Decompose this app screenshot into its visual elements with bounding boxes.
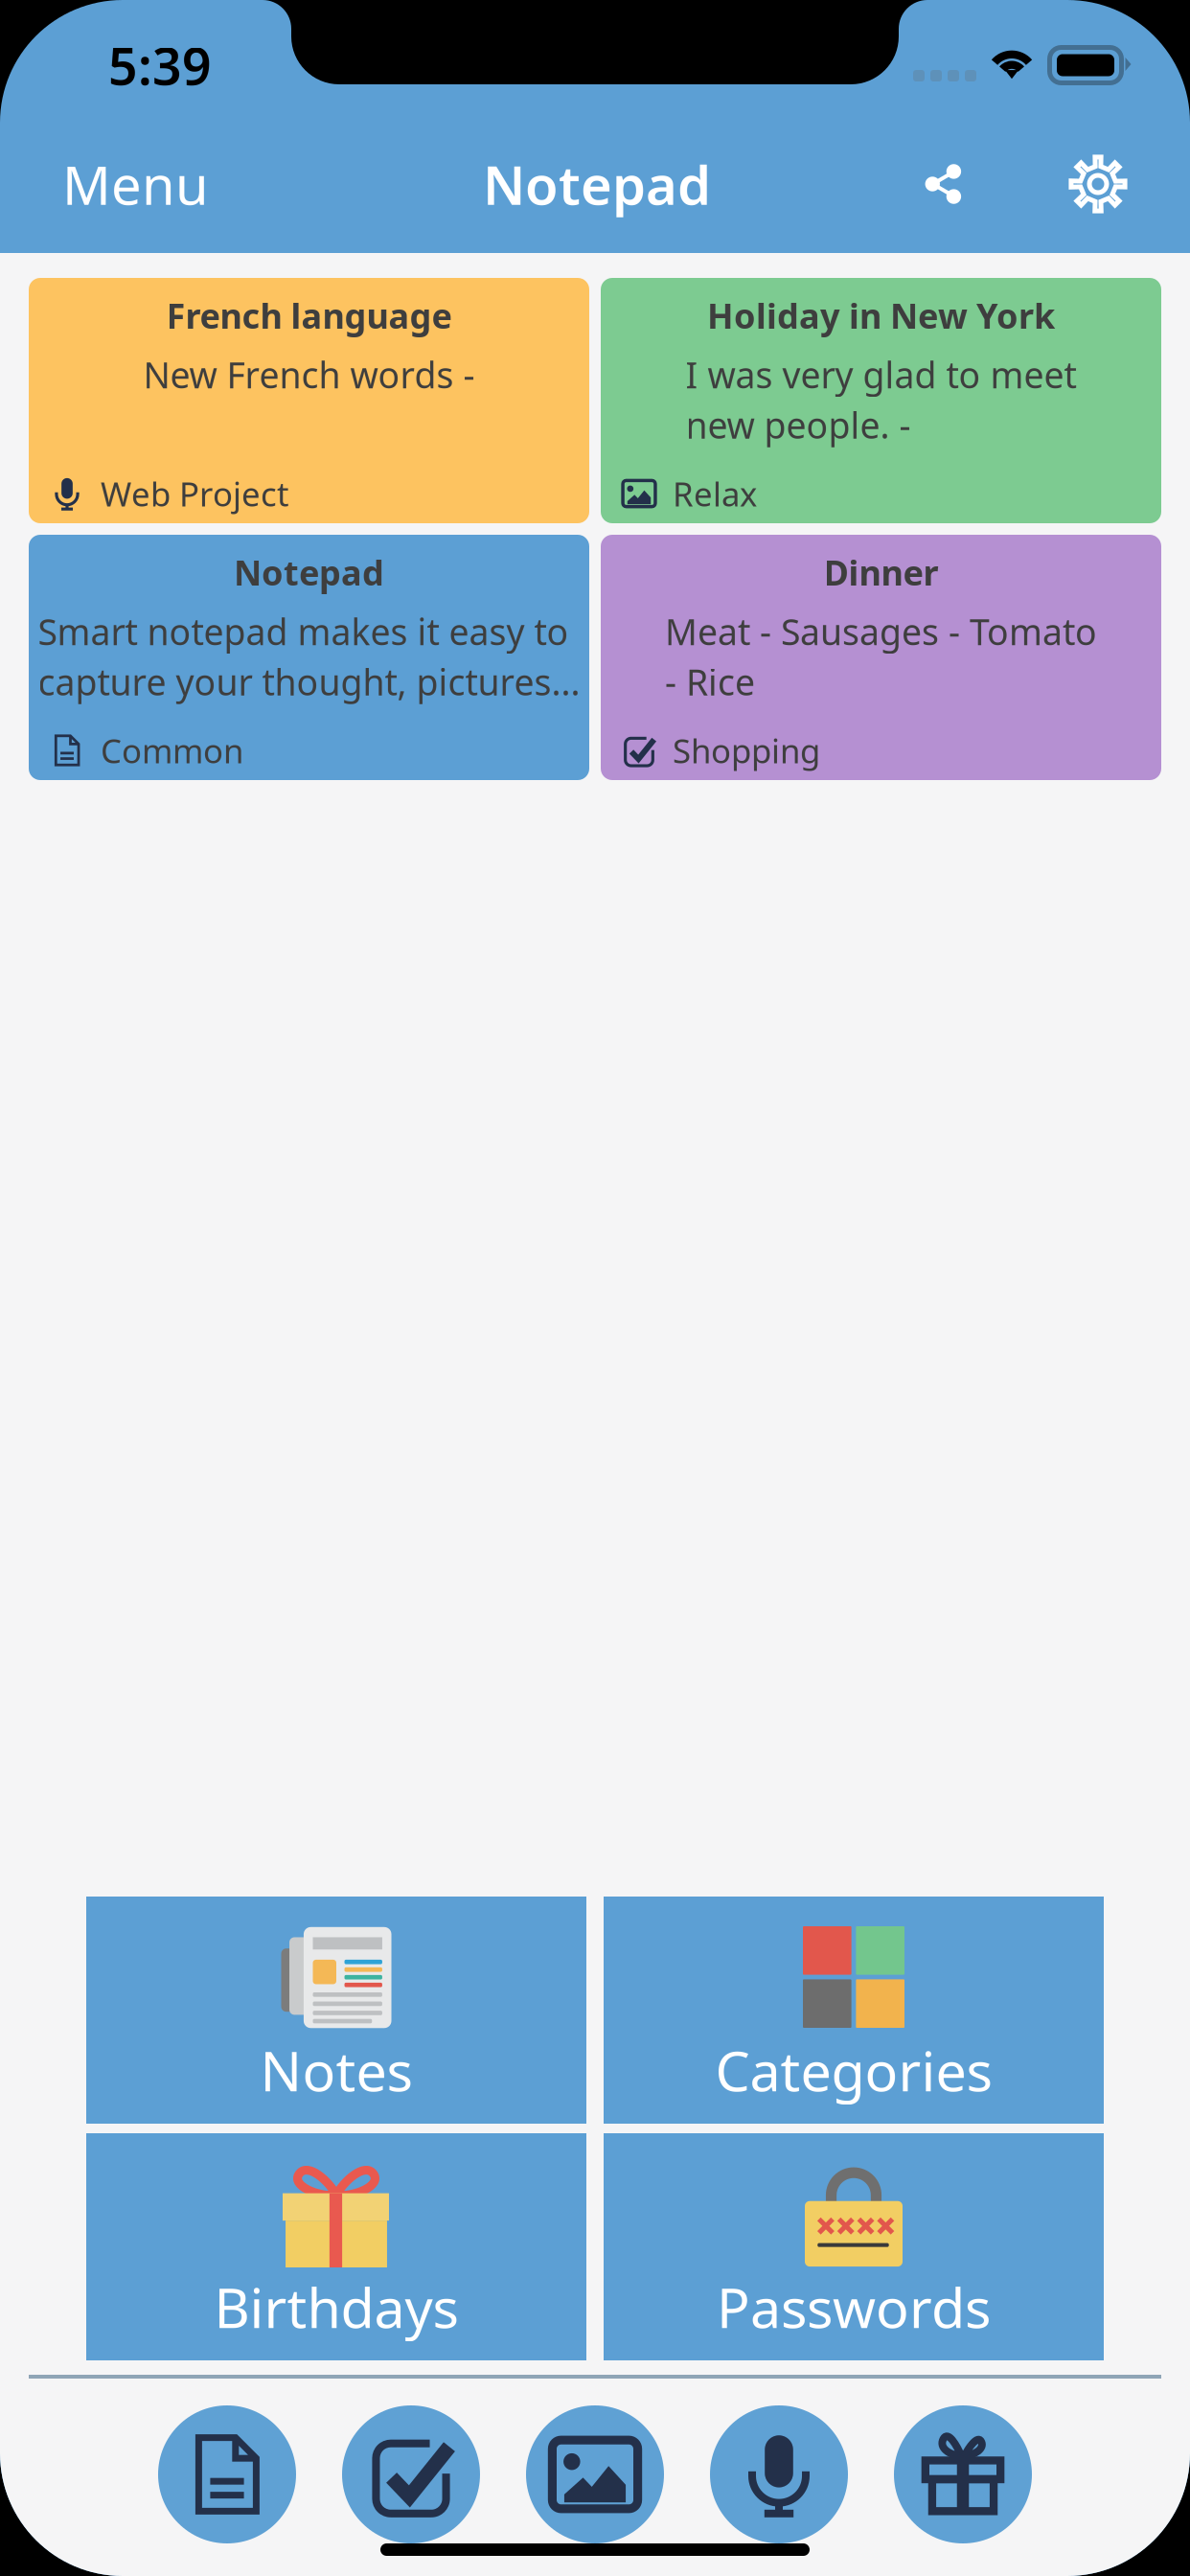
button[interactable]: New birthday: [894, 2405, 1032, 2543]
staticText: Shopping: [673, 728, 820, 772]
button[interactable]: Birthdays: [86, 2133, 586, 2360]
staticText: Passwords: [717, 2270, 991, 2343]
button[interactable]: New note: [158, 2405, 296, 2543]
staticText: Menu: [62, 148, 209, 220]
staticText: Holiday in New York: [707, 292, 1055, 338]
staticText: Notepad: [234, 549, 384, 595]
staticText: Notes: [260, 2034, 412, 2107]
button[interactable]: New checklist: [342, 2405, 480, 2543]
staticText: Meat - Sausages - Tomato - Rice: [665, 608, 1097, 706]
staticText: Smart notepad makes it easy to capture y…: [38, 608, 580, 706]
button[interactable]: Passwords: [604, 2133, 1104, 2360]
staticText: Web Project: [101, 471, 289, 516]
staticText: Common: [101, 728, 243, 772]
staticText: New French words -: [143, 351, 475, 398]
button[interactable]: Notepad: [29, 535, 589, 780]
staticText: I was very glad to meet new people. -: [686, 351, 1076, 449]
staticText: 5:39: [108, 31, 212, 99]
staticText: Relax: [673, 471, 757, 516]
button[interactable]: Categories: [604, 1897, 1104, 2124]
button[interactable]: New voice note: [710, 2405, 848, 2543]
button[interactable]: Dinner: [601, 535, 1161, 780]
staticText: Notepad: [483, 148, 711, 220]
staticText: Categories: [715, 2034, 992, 2107]
button[interactable]: French language: [29, 278, 589, 523]
button[interactable]: Menu: [62, 131, 216, 237]
button[interactable]: Notepad: [453, 131, 741, 237]
staticText: French language: [166, 292, 452, 338]
button[interactable]: New photo note: [526, 2405, 664, 2543]
button[interactable]: Share: [895, 136, 991, 232]
button[interactable]: Holiday in New York: [601, 278, 1161, 523]
button[interactable]: Notes: [86, 1897, 586, 2124]
staticText: Birthdays: [214, 2270, 458, 2343]
staticText: Dinner: [824, 549, 938, 595]
button[interactable]: Settings: [1050, 136, 1146, 232]
